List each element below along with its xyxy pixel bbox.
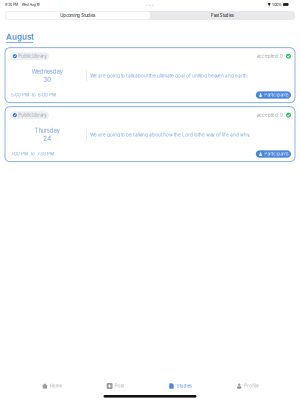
staticText: Public Library xyxy=(18,54,46,59)
staticText: accepted: 0 xyxy=(257,112,283,118)
staticText: Post xyxy=(115,383,124,389)
button[interactable]: Participants xyxy=(256,91,291,99)
button[interactable]: Profile xyxy=(233,381,261,391)
staticText: • • • xyxy=(146,3,154,6)
staticText: We are going to talk about the ultimate … xyxy=(90,73,248,78)
button[interactable]: Participants xyxy=(256,150,291,158)
staticText: 5:00 PM To 6:00 PM xyxy=(11,92,56,98)
staticText: August xyxy=(6,32,34,42)
staticText: 100% xyxy=(272,2,282,7)
staticText: Participants xyxy=(264,151,288,157)
button[interactable]: Home xyxy=(39,381,65,391)
button[interactable]: Upcoming Studies xyxy=(6,12,150,19)
staticText: 30 xyxy=(43,76,51,83)
button[interactable]: Post xyxy=(104,381,127,391)
staticText: Profile xyxy=(244,383,258,389)
staticText: Studies xyxy=(176,383,191,389)
staticText: Participants xyxy=(264,92,288,98)
staticText: 24 xyxy=(43,135,51,142)
button[interactable]: Studies xyxy=(165,381,194,391)
staticText: Wed Aug 18 xyxy=(22,2,40,7)
staticText: 7:00 PM To 7:30 PM xyxy=(11,151,54,157)
staticText: accepted: 0 xyxy=(257,53,283,59)
staticText: Public Library xyxy=(18,113,46,118)
staticText: We are going to be talking about how the… xyxy=(90,132,250,137)
staticText: 9:30 PM xyxy=(5,2,18,7)
button[interactable]: Past Studies xyxy=(150,12,294,19)
staticText: Past Studies xyxy=(211,13,234,18)
staticText: Wednesday xyxy=(31,68,62,75)
staticText: Thursday xyxy=(34,127,59,134)
staticText: Upcoming Studies xyxy=(60,13,95,18)
staticText: Home xyxy=(50,383,62,389)
